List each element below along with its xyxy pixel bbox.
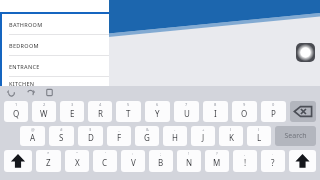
- staticText: K: [229, 132, 234, 143]
- staticText: ;: [160, 151, 162, 156]
- staticText: T: [126, 108, 131, 119]
- staticText: .: [272, 151, 274, 156]
- staticText: R: [98, 108, 103, 119]
- staticText: I: [214, 108, 217, 119]
- button[interactable]: Shift right: [289, 150, 316, 172]
- button[interactable]: Clipboard: [44, 87, 55, 98]
- staticText: X: [75, 157, 80, 168]
- staticText: 3: [71, 102, 74, 107]
- button[interactable]: *: [36, 150, 61, 172]
- staticText: J: [202, 132, 205, 143]
- staticText: 4: [99, 102, 102, 107]
- staticText: 8: [214, 102, 217, 107]
- button[interactable]: ?: [205, 150, 229, 172]
- button[interactable]: ENTRANCE: [0, 56, 109, 77]
- button[interactable]: Undo: [6, 87, 17, 98]
- button[interactable]: (: [219, 126, 243, 146]
- button[interactable]: ): [247, 126, 271, 146]
- staticText: ': [105, 151, 106, 156]
- staticText: ): [258, 127, 260, 132]
- staticText: M: [213, 157, 221, 168]
- staticText: Search: [284, 131, 307, 141]
- staticText: W: [40, 108, 48, 119]
- staticText: Q: [13, 108, 20, 119]
- button[interactable]: $: [78, 126, 103, 146]
- staticText: 0: [272, 102, 275, 107]
- button[interactable]: .: [261, 150, 285, 172]
- staticText: BATHROOM: [9, 21, 43, 28]
- staticText: B: [158, 157, 164, 168]
- staticText: ": [76, 151, 78, 156]
- staticText: Y: [155, 108, 160, 119]
- staticText: _: [118, 127, 120, 132]
- staticText: KITCHEN: [9, 80, 35, 87]
- button[interactable]: #: [49, 126, 74, 146]
- staticText: 9: [243, 102, 246, 107]
- button[interactable]: :: [121, 150, 145, 172]
- button[interactable]: 8: [203, 101, 228, 122]
- staticText: 5: [127, 102, 130, 107]
- button[interactable]: 7: [174, 101, 199, 122]
- staticText: ?: [271, 157, 275, 168]
- staticText: Z: [46, 157, 51, 168]
- button[interactable]: 3: [60, 101, 84, 122]
- staticText: +: [202, 127, 205, 132]
- staticText: !: [188, 151, 190, 156]
- button[interactable]: 5: [116, 101, 141, 122]
- button[interactable]: 2: [32, 101, 56, 122]
- staticText: A: [30, 132, 36, 143]
- staticText: 6: [156, 102, 159, 107]
- staticText: @: [31, 127, 35, 132]
- staticText: S: [59, 132, 64, 143]
- staticText: #: [60, 127, 63, 132]
- staticText: (: [230, 127, 232, 132]
- staticText: N: [186, 157, 193, 168]
- staticText: 7: [185, 102, 188, 107]
- staticText: O: [241, 108, 248, 119]
- button[interactable]: Redo: [25, 87, 36, 98]
- staticText: BEDROOM: [9, 42, 39, 49]
- button[interactable]: 9: [232, 101, 257, 122]
- staticText: !: [244, 157, 247, 168]
- staticText: F: [117, 132, 122, 143]
- button[interactable]: &: [135, 126, 159, 146]
- button[interactable]: -: [163, 126, 187, 146]
- staticText: 1: [15, 102, 18, 107]
- button[interactable]: BATHROOM: [0, 14, 109, 35]
- staticText: ?: [216, 151, 218, 156]
- button[interactable]: 6: [145, 101, 170, 122]
- button[interactable]: ;: [149, 150, 173, 172]
- staticText: L: [257, 132, 262, 143]
- button[interactable]: Backspace: [290, 101, 316, 122]
- button[interactable]: 4: [88, 101, 112, 122]
- staticText: $: [89, 127, 92, 132]
- staticText: V: [131, 157, 136, 168]
- button[interactable]: ,: [233, 150, 257, 172]
- button[interactable]: KITCHEN: [0, 77, 109, 89]
- staticText: C: [102, 157, 108, 168]
- button[interactable]: Shift: [4, 150, 32, 172]
- staticText: 2: [43, 102, 46, 107]
- staticText: ENTRANCE: [9, 63, 40, 70]
- button[interactable]: !: [177, 150, 201, 172]
- staticText: E: [70, 108, 75, 119]
- button[interactable]: @: [20, 126, 45, 146]
- button[interactable]: 1: [4, 101, 28, 122]
- staticText: U: [184, 108, 190, 119]
- staticText: H: [172, 132, 178, 143]
- button[interactable]: ': [93, 150, 117, 172]
- staticText: &: [146, 127, 149, 132]
- button[interactable]: Search: [275, 126, 316, 146]
- button[interactable]: +: [191, 126, 215, 146]
- button[interactable]: _: [107, 126, 131, 146]
- staticText: *: [47, 151, 50, 156]
- button[interactable]: 0: [261, 101, 286, 122]
- staticText: -: [174, 127, 176, 132]
- staticText: G: [144, 132, 150, 143]
- button[interactable]: ": [65, 150, 89, 172]
- staticText: P: [271, 108, 276, 119]
- button[interactable]: Capture: [296, 43, 315, 62]
- staticText: :: [132, 151, 134, 156]
- button[interactable]: BEDROOM: [0, 35, 109, 56]
